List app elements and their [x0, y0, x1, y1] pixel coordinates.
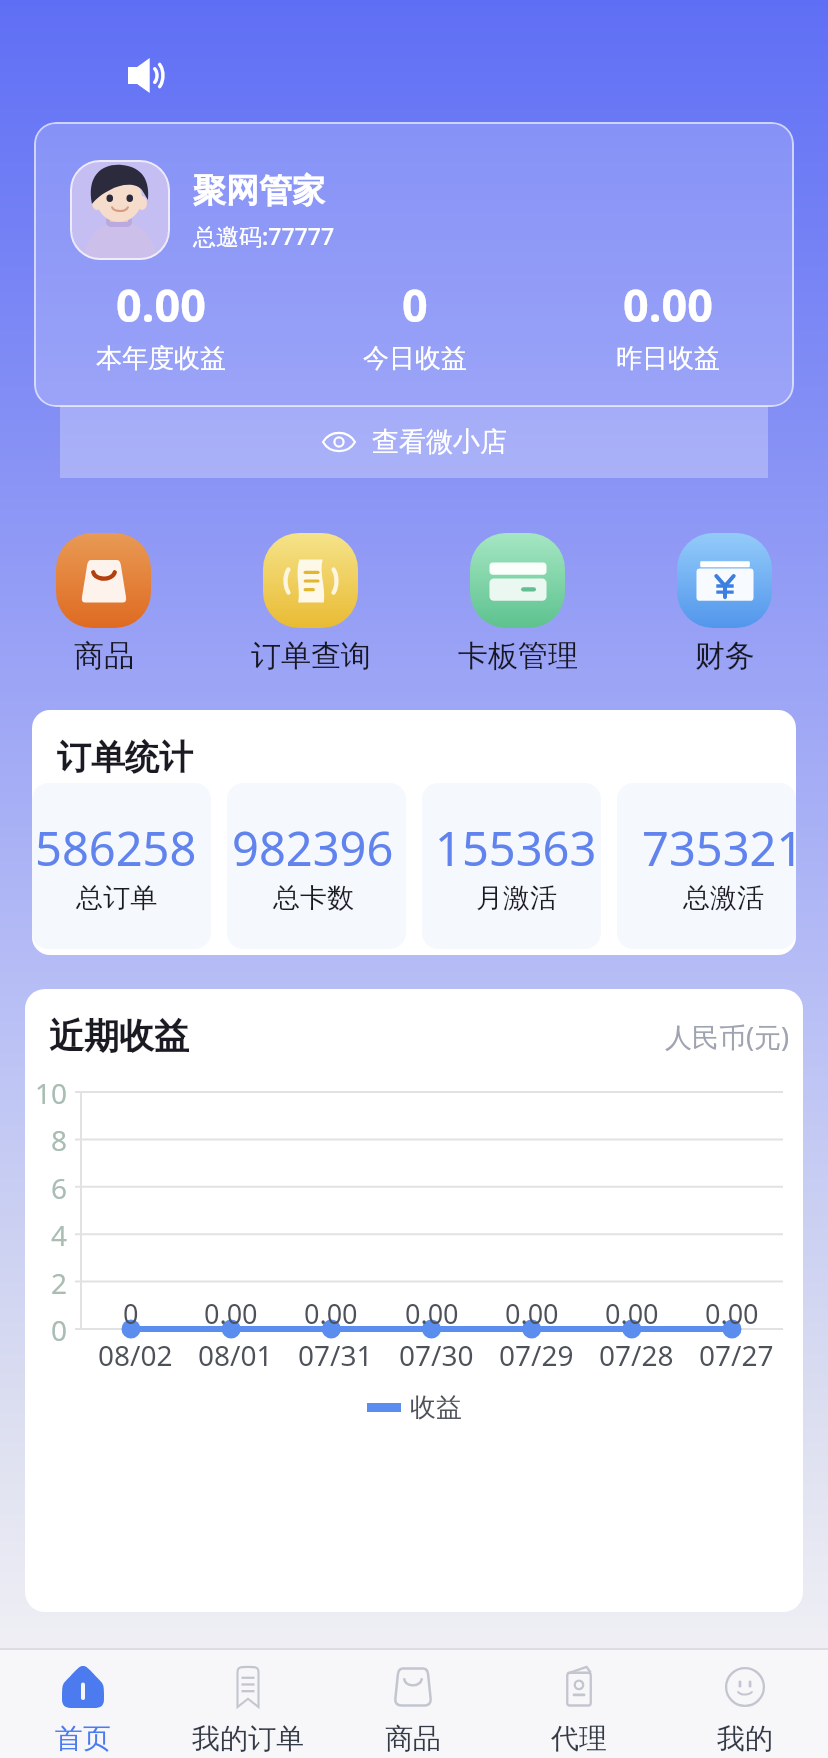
staticText: 0.00	[605, 1295, 659, 1332]
button[interactable]: Announcements	[110, 40, 180, 110]
staticText: 982396	[232, 816, 394, 880]
button[interactable]: 查看微小店	[60, 406, 768, 478]
staticText: 近期收益	[49, 1014, 189, 1058]
staticText: 0.00	[405, 1295, 459, 1332]
staticText: 08/02	[98, 1336, 173, 1374]
button[interactable]: 卡板管理	[414, 533, 621, 675]
staticText: 订单查询	[251, 637, 371, 675]
staticText: 0.00	[505, 1295, 559, 1332]
staticText: 代理	[551, 1721, 607, 1756]
staticText: 07/27	[699, 1336, 774, 1374]
staticText: 月激活	[476, 881, 557, 915]
button[interactable]: 商品	[0, 533, 207, 675]
staticText: 0.00	[705, 1295, 759, 1332]
staticText: 0.00	[116, 274, 206, 335]
button[interactable]: 155363	[422, 783, 601, 949]
staticText: 8	[51, 1121, 68, 1159]
staticText: 人民币(元)	[665, 1018, 790, 1055]
staticText: 聚网管家	[193, 170, 325, 212]
staticText: 今日收益	[363, 342, 467, 375]
staticText: 07/29	[499, 1336, 574, 1374]
staticText: 收益	[410, 1391, 462, 1424]
staticText: 首页	[55, 1721, 111, 1756]
staticText: 我的订单	[192, 1721, 304, 1756]
button[interactable]: 586258	[32, 783, 211, 949]
staticText: 财务	[695, 637, 755, 675]
button[interactable]: 我的	[662, 1650, 828, 1758]
staticText: 商品	[385, 1721, 441, 1756]
staticText: 155363	[435, 816, 597, 880]
staticText: 总订单	[76, 881, 157, 915]
staticText: 735321	[642, 816, 796, 880]
staticText: 0	[51, 1311, 68, 1349]
staticText: 查看微小店	[372, 425, 507, 459]
staticText: 07/31	[298, 1336, 373, 1374]
staticText: 0	[123, 1295, 139, 1332]
button[interactable]: 代理	[496, 1650, 662, 1758]
staticText: 586258	[35, 816, 197, 880]
button[interactable]: 商品	[330, 1650, 496, 1758]
staticText: 0.00	[623, 274, 713, 335]
staticText: 6	[51, 1169, 68, 1207]
staticText: 商品	[74, 637, 134, 675]
staticText: 2	[51, 1264, 68, 1302]
staticText: 0	[402, 274, 428, 335]
staticText: 4	[51, 1216, 68, 1254]
staticText: 0.00	[304, 1295, 358, 1332]
staticText: 总卡数	[273, 881, 354, 915]
button[interactable]: 982396	[227, 783, 406, 949]
staticText: 08/01	[198, 1336, 273, 1374]
staticText: 我的	[717, 1721, 773, 1756]
staticText: 总邀码:77777	[193, 220, 335, 251]
staticText: 07/30	[399, 1336, 474, 1374]
staticText: 昨日收益	[616, 342, 720, 375]
staticText: 本年度收益	[96, 342, 226, 375]
button[interactable]: 财务	[621, 533, 828, 675]
button[interactable]: 首页	[0, 1650, 165, 1758]
staticText: 订单统计	[57, 736, 193, 779]
staticText: 10	[35, 1074, 68, 1112]
staticText: 0.00	[204, 1295, 258, 1332]
button[interactable]: 我的订单	[165, 1650, 330, 1758]
staticText: 07/28	[599, 1336, 674, 1374]
staticText: 总激活	[683, 881, 764, 915]
button[interactable]: 735321	[617, 783, 796, 949]
button[interactable]: 订单查询	[207, 533, 414, 675]
staticText: 卡板管理	[458, 637, 578, 675]
